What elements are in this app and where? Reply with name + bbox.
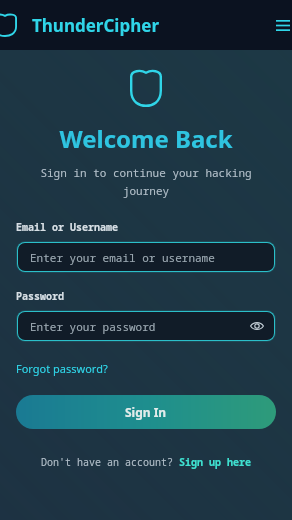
- staticText: Forgot password?: [16, 361, 108, 376]
- staticText: Password: [16, 289, 276, 303]
- staticText: ThunderCipher: [32, 14, 159, 37]
- staticText: Don't have an account? Sign up here: [41, 455, 251, 469]
- button[interactable]: Show password: [246, 315, 268, 337]
- button[interactable]: Sign In: [16, 395, 276, 429]
- staticText: Enter your password: [30, 319, 156, 334]
- staticText: Welcome Back: [59, 122, 233, 155]
- button[interactable]: Don't have an account? Sign up here: [16, 455, 276, 469]
- button[interactable]: Forgot password?: [16, 361, 276, 376]
- button[interactable]: ThunderCipher logo: [0, 12, 18, 38]
- staticText: Sign in to continue your hacking journey: [22, 165, 270, 198]
- staticText: Email or Username: [16, 220, 276, 234]
- button[interactable]: Menu: [270, 12, 292, 38]
- staticText: Enter your email or username: [30, 250, 215, 265]
- button[interactable]: Enter your email or username: [18, 243, 274, 271]
- button[interactable]: Enter your password: [18, 312, 274, 340]
- staticText: Sign In: [125, 404, 167, 420]
